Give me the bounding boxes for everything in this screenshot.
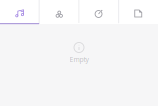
staticText: Empty (69, 55, 88, 64)
button[interactable]: Recent (79, 0, 118, 24)
button[interactable]: Files (118, 0, 158, 24)
button[interactable]: Music (0, 0, 39, 24)
button[interactable]: Artists (39, 0, 79, 24)
